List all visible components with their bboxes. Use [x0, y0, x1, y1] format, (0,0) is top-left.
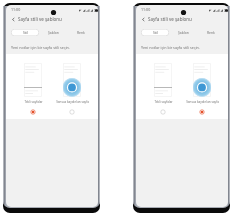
- staticText: Tekli sayfalar: [24, 100, 43, 104]
- staticText: Sonsuz kaydırılan sayfa: [56, 100, 89, 104]
- staticText: Sayfa stili ve şablonu: [18, 16, 62, 22]
- button[interactable]: Renk: [201, 29, 221, 36]
- button[interactable]: Tekli sayfalar: [160, 109, 166, 115]
- staticText: 11:00: [11, 7, 21, 12]
- staticText: Renk: [207, 30, 215, 35]
- button[interactable]: Renk: [71, 29, 91, 36]
- staticText: Yeni notlar için bir sayfa stili seçin.: [141, 45, 200, 50]
- staticText: Sayfa stili ve şablonu: [148, 16, 192, 22]
- button[interactable]: Sonsuz kaydırılan sayfa: [199, 109, 205, 115]
- button[interactable]: [193, 63, 211, 97]
- staticText: Stil: [153, 30, 158, 35]
- button[interactable]: Back: [140, 16, 147, 23]
- button[interactable]: [24, 63, 42, 97]
- staticText: Şablon: [48, 30, 59, 35]
- staticText: Sonsuz kaydırılan sayfa: [186, 100, 219, 104]
- staticText: Şablon: [178, 30, 189, 35]
- staticText: Yeni notlar için bir sayfa stili seçin.: [11, 45, 70, 50]
- button[interactable]: Tekli sayfalar: [30, 109, 36, 115]
- button[interactable]: Sonsuz kaydırılan sayfa: [69, 109, 75, 115]
- staticText: Stil: [23, 30, 28, 35]
- button[interactable]: Şablon: [173, 29, 193, 36]
- button[interactable]: Stil: [141, 29, 169, 36]
- staticText: 11:00: [141, 7, 151, 12]
- button[interactable]: [154, 63, 172, 97]
- button[interactable]: Stil: [11, 29, 39, 36]
- staticText: Tekli sayfalar: [154, 100, 173, 104]
- button[interactable]: Back: [10, 16, 17, 23]
- staticText: Renk: [77, 30, 85, 35]
- button[interactable]: Şablon: [43, 29, 63, 36]
- button[interactable]: [63, 63, 81, 97]
